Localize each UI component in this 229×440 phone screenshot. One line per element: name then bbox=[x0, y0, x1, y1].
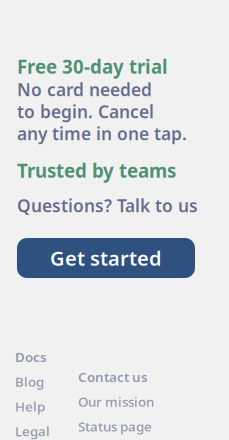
staticText: Contact us bbox=[78, 368, 148, 386]
staticText: Help bbox=[15, 397, 45, 415]
button[interactable]: Our mission bbox=[78, 393, 154, 410]
staticText: Status page bbox=[78, 417, 152, 435]
button[interactable]: Docs bbox=[15, 348, 47, 366]
button[interactable]: Blog bbox=[15, 373, 44, 390]
staticText: Free 30-day trial bbox=[17, 54, 168, 79]
button[interactable]: Get started bbox=[17, 238, 195, 278]
button[interactable]: Help bbox=[15, 397, 45, 415]
staticText: Questions? Talk to us bbox=[17, 194, 198, 217]
staticText: Blog bbox=[15, 373, 44, 390]
staticText: Our mission bbox=[78, 393, 154, 410]
staticText: any time in one tap. bbox=[17, 122, 187, 145]
button[interactable]: Status page bbox=[78, 417, 152, 435]
staticText: No card needed bbox=[17, 78, 152, 101]
staticText: Legal bbox=[15, 422, 50, 440]
button[interactable]: Legal bbox=[15, 422, 50, 440]
staticText: Docs bbox=[15, 348, 47, 366]
staticText: Trusted by teams bbox=[17, 158, 176, 183]
staticText: to begin. Cancel bbox=[17, 100, 154, 123]
button[interactable]: Contact us bbox=[78, 368, 148, 386]
staticText: Get started bbox=[50, 245, 162, 271]
